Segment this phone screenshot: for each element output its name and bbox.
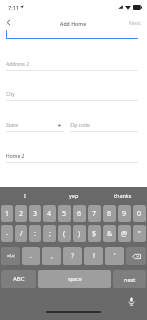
button[interactable]: 6 bbox=[73, 205, 86, 222]
button[interactable]: 3 bbox=[29, 205, 41, 222]
button[interactable]: Home 2 bbox=[0, 152, 147, 161]
staticText: 9 bbox=[122, 209, 127, 219]
staticText: . bbox=[30, 251, 32, 261]
staticText: thanks bbox=[114, 192, 132, 199]
button[interactable]: next bbox=[113, 270, 146, 288]
staticText: 0 bbox=[137, 209, 142, 219]
button[interactable]: - bbox=[1, 225, 13, 242]
staticText: Add Home bbox=[60, 20, 87, 27]
button[interactable]: 1 bbox=[1, 205, 13, 222]
button[interactable]: Voice input bbox=[125, 295, 138, 308]
staticText: ! bbox=[93, 251, 95, 261]
button[interactable]: $ bbox=[88, 225, 101, 242]
staticText: Next bbox=[129, 19, 141, 26]
staticText: ' bbox=[114, 251, 116, 261]
staticText: , bbox=[51, 251, 53, 261]
button[interactable]: 4 bbox=[43, 205, 56, 222]
staticText: - bbox=[6, 229, 9, 239]
staticText: $ bbox=[92, 229, 97, 239]
staticText: & bbox=[107, 229, 113, 239]
staticText: ? bbox=[71, 251, 75, 261]
button[interactable]: 0 bbox=[133, 205, 146, 222]
button[interactable]: Next bbox=[129, 14, 141, 30]
button[interactable]: 8 bbox=[103, 205, 116, 222]
staticText: 7 bbox=[92, 209, 97, 219]
staticText: I bbox=[24, 192, 26, 199]
button[interactable]: State bbox=[0, 121, 64, 129]
staticText: State bbox=[6, 122, 18, 129]
staticText: @ bbox=[121, 229, 128, 239]
staticText: next bbox=[124, 276, 136, 283]
button[interactable]: 5 bbox=[58, 205, 71, 222]
staticText: 2 bbox=[19, 209, 24, 219]
button[interactable]: Back bbox=[0, 14, 16, 30]
button[interactable]: @ bbox=[118, 225, 131, 242]
button[interactable]: yep bbox=[49, 187, 98, 203]
staticText: 5 bbox=[62, 209, 67, 219]
button[interactable]: Zip code bbox=[70, 121, 138, 129]
staticText: 7:11 bbox=[8, 4, 19, 11]
button[interactable]: / bbox=[15, 225, 27, 242]
staticText: 4 bbox=[47, 209, 52, 219]
button[interactable]: ? bbox=[63, 247, 82, 265]
staticText: 3 bbox=[33, 209, 38, 219]
staticText: Zip code bbox=[70, 122, 90, 129]
button[interactable]: thanks bbox=[98, 187, 147, 203]
button[interactable]: , bbox=[42, 247, 61, 265]
staticText: 6 bbox=[77, 209, 82, 219]
button[interactable]: : bbox=[29, 225, 41, 242]
button[interactable]: " bbox=[133, 225, 146, 242]
button[interactable]: space bbox=[38, 270, 111, 288]
button[interactable]: ' bbox=[105, 247, 124, 265]
staticText: ABC bbox=[13, 275, 25, 283]
staticText: ; bbox=[49, 229, 51, 239]
staticText: 8 bbox=[107, 209, 112, 219]
button[interactable]: =\< bbox=[1, 247, 20, 265]
button[interactable]: . bbox=[22, 247, 40, 265]
staticText: " bbox=[138, 229, 141, 239]
staticText: / bbox=[20, 229, 23, 239]
button[interactable]: ) bbox=[73, 225, 86, 242]
button[interactable]: Address 2 bbox=[0, 60, 147, 69]
button[interactable]: 2 bbox=[15, 205, 27, 222]
button[interactable]: ( bbox=[58, 225, 71, 242]
staticText: ( bbox=[63, 229, 66, 239]
staticText: ) bbox=[78, 229, 81, 239]
button[interactable]: City bbox=[0, 90, 147, 99]
button[interactable]: 7 bbox=[88, 205, 101, 222]
staticText: Home 2 bbox=[6, 153, 25, 160]
button[interactable]: Backspace bbox=[126, 247, 146, 265]
button[interactable]: ; bbox=[43, 225, 56, 242]
button[interactable]: ABC bbox=[1, 270, 36, 288]
button[interactable]: 9 bbox=[118, 205, 131, 222]
staticText: space bbox=[68, 276, 82, 283]
staticText: 1 bbox=[5, 209, 10, 219]
button[interactable]: & bbox=[103, 225, 116, 242]
staticText: =\< bbox=[7, 253, 15, 260]
staticText: Address 2 bbox=[6, 61, 30, 68]
staticText: : bbox=[34, 229, 36, 239]
staticText: City bbox=[6, 91, 15, 98]
button[interactable]: ! bbox=[84, 247, 103, 265]
button[interactable]: I bbox=[0, 187, 49, 203]
button[interactable] bbox=[0, 28, 147, 39]
staticText: yep bbox=[69, 192, 79, 199]
